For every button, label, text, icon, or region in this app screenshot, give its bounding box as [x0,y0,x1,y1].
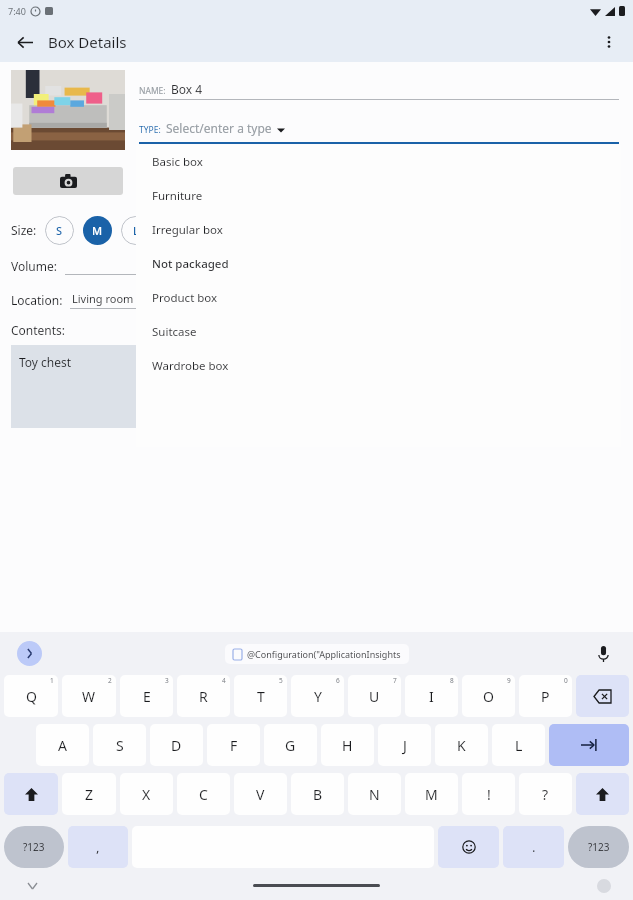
button[interactable]: Wardrobe box [136,349,621,383]
button[interactable]: B [291,773,344,815]
staticText: Toy chest [19,354,72,370]
button[interactable]: Key [549,724,629,766]
staticText: 6 [336,676,340,685]
button[interactable]: G [264,724,317,766]
button[interactable]: ?123 [568,826,629,868]
staticText: V [256,785,265,804]
staticText: L [515,736,523,755]
button[interactable]: Z [62,773,116,815]
button[interactable]: V [234,773,287,815]
staticText: F [230,736,238,755]
button[interactable]: . [503,826,564,868]
staticText: Location: [11,292,63,308]
button[interactable]: L [492,724,545,766]
staticText: @Configuration("ApplicationInsights [247,648,401,660]
button[interactable]: Key [4,773,58,815]
staticText: G [285,736,296,755]
staticText: N [369,785,380,804]
staticText: E [143,687,151,706]
button[interactable]: ! [462,773,515,815]
staticText: A [58,736,67,755]
button[interactable]: A [36,724,89,766]
button[interactable]: Product box [136,281,621,315]
button[interactable]: N [348,773,401,815]
button[interactable]: Hide keyboard [22,876,42,896]
button[interactable]: Take photo [13,167,123,195]
button[interactable]: 4 [177,675,230,717]
staticText: 2 [108,676,112,685]
button[interactable]: More options [591,24,627,60]
button[interactable]: Expand toolbar [17,641,42,666]
staticText: 5 [279,676,283,685]
staticText: ?123 [588,840,610,854]
button[interactable]: 8 [405,675,458,717]
staticText: Volume: [11,258,57,274]
button[interactable]: 2 [62,675,116,717]
button[interactable]: 5 [234,675,287,717]
button[interactable]: S [93,724,146,766]
staticText: I [429,687,434,706]
staticText: Select/enter a type [166,120,272,136]
staticText: Z [85,785,94,804]
button[interactable]: @Configuration("ApplicationInsights [233,648,401,660]
button[interactable]: F [207,724,260,766]
button[interactable]: J [378,724,431,766]
button[interactable]: C [177,773,230,815]
staticText: U [369,687,380,706]
button[interactable]: Back [6,24,42,60]
button[interactable]: , [68,826,128,868]
staticText: O [483,687,494,706]
button[interactable]: Basic box [136,145,621,179]
staticText: W [82,687,96,706]
staticText: Q [26,687,37,706]
button[interactable]: Furniture [136,179,621,213]
button[interactable]: X [120,773,173,815]
button[interactable]: Suitcase [136,315,621,349]
button[interactable]: 6 [291,675,344,717]
button[interactable]: 7 [348,675,401,717]
button[interactable]: M [405,773,458,815]
staticText: B [313,785,323,804]
button[interactable]: H [321,724,374,766]
button[interactable]: M [83,216,112,245]
staticText: Irregular box [152,222,223,238]
staticText: TYPE: [139,124,161,136]
staticText: ! [487,785,491,804]
button[interactable]: Key [576,675,629,717]
button[interactable]: Irregular box [136,213,621,247]
staticText: Living room [72,291,134,306]
button[interactable]: 9 [462,675,515,717]
staticText: L [133,223,139,238]
button[interactable]: 1 [4,675,58,717]
staticText: 7 [393,676,397,685]
button[interactable]: Keyboard settings [597,879,611,893]
button[interactable]: ? [519,773,572,815]
staticText: 9 [507,676,511,685]
staticText: X [142,785,151,804]
button[interactable]: K [435,724,488,766]
staticText: D [171,736,182,755]
staticText: M [92,223,103,238]
staticText: . [532,838,536,856]
button[interactable]: Key [576,773,629,815]
staticText: 1 [50,676,54,685]
button[interactable]: 3 [120,675,173,717]
button[interactable]: L [121,216,150,245]
staticText: R [199,687,208,706]
staticText: 2 c.ft. [164,257,193,272]
button[interactable]: S [45,216,74,245]
button[interactable]: 0 [519,675,572,717]
button[interactable]: ?123 [4,826,64,868]
button[interactable]: Emoji [438,826,499,868]
button[interactable]: Toy chest [11,345,611,428]
staticText: T [257,687,265,706]
staticText: Basic box [152,154,203,170]
staticText: M [425,785,438,804]
button[interactable]: Voice input [589,640,617,668]
staticText: Box Details [48,32,127,52]
staticText: 3 [165,676,169,685]
button[interactable]: D [150,724,203,766]
staticText: 8 [450,676,454,685]
button[interactable]: Not packaged [136,247,621,281]
